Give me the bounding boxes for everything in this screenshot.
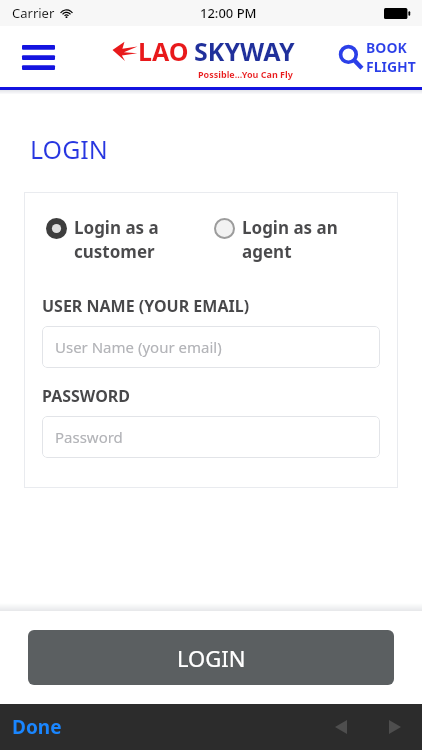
staticText: Possible...You Can Fly	[198, 68, 293, 80]
button[interactable]: BOOK	[338, 38, 416, 76]
button[interactable]: User Name (your email)	[42, 326, 380, 368]
button[interactable]: Menu	[14, 33, 62, 81]
staticText: Password	[55, 427, 123, 447]
staticText: Done	[12, 714, 62, 740]
staticText: LOGIN	[177, 643, 246, 673]
staticText: LAO	[138, 34, 189, 68]
staticText: Login as a customer	[74, 216, 159, 263]
button[interactable]: Done	[4, 708, 70, 746]
button[interactable]: LOGIN	[28, 630, 394, 685]
staticText: BOOK	[366, 38, 407, 57]
button[interactable]: Previous	[324, 710, 358, 744]
staticText: User Name (your email)	[55, 337, 222, 357]
button[interactable]: Login as an agent	[214, 216, 382, 263]
staticText: PASSWORD	[42, 385, 131, 407]
staticText: 12:00 PM	[200, 4, 257, 22]
button[interactable]: Next	[378, 710, 412, 744]
button[interactable]: Login as a customer	[46, 216, 214, 263]
staticText: LOGIN	[30, 132, 108, 166]
button[interactable]: Password	[42, 416, 380, 458]
staticText: Carrier	[12, 4, 55, 22]
staticText: FLIGHT	[366, 57, 416, 76]
staticText: Login as an agent	[242, 216, 338, 263]
staticText: USER NAME (YOUR EMAIL)	[42, 295, 250, 317]
staticText: SKYWAY	[194, 34, 295, 68]
